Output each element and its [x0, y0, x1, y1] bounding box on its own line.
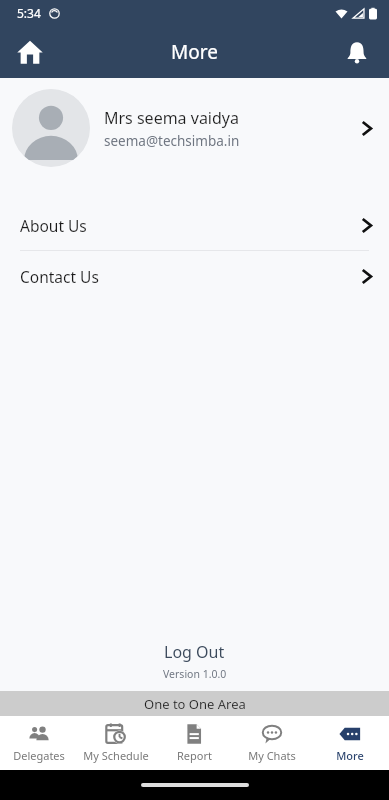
staticText: More — [171, 39, 218, 65]
button[interactable]: Delegates — [0, 718, 77, 768]
staticText: seema@techsimba.in — [104, 132, 240, 150]
button[interactable]: About Us — [0, 200, 389, 250]
button[interactable]: More — [311, 718, 389, 768]
button[interactable]: My Schedule — [77, 718, 155, 768]
button[interactable]: Report — [155, 718, 233, 768]
staticText: Delegates — [13, 748, 65, 763]
button[interactable]: Log Out — [146, 639, 243, 665]
staticText: Contact Us — [20, 266, 343, 287]
button[interactable]: Home — [8, 30, 52, 74]
staticText: Version 1.0.0 — [163, 667, 227, 681]
staticText: 5:34 — [17, 5, 41, 21]
staticText: Mrs seema vaidya — [104, 107, 239, 129]
staticText: Report — [177, 748, 212, 763]
staticText: About Us — [20, 215, 343, 236]
staticText: My Schedule — [83, 748, 149, 763]
staticText: My Chats — [248, 748, 296, 763]
button[interactable]: One to One Area — [0, 691, 389, 716]
staticText: Log Out — [164, 641, 225, 663]
button[interactable]: Notifications — [335, 30, 379, 74]
button[interactable]: Mrs seema vaidya — [0, 78, 389, 178]
button[interactable]: My Chats — [233, 718, 311, 768]
staticText: One to One Area — [144, 695, 246, 713]
staticText: More — [336, 748, 364, 763]
button[interactable]: Contact Us — [0, 251, 389, 301]
